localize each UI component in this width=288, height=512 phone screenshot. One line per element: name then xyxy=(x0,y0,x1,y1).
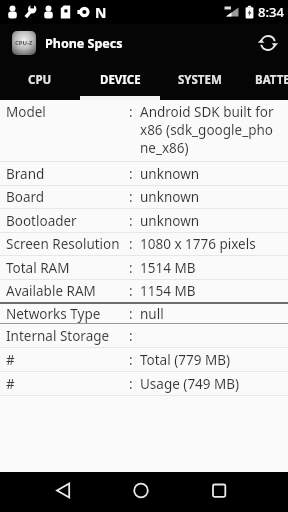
staticText: : xyxy=(129,327,133,345)
button[interactable]: SYSTEM xyxy=(160,62,240,100)
staticText: unknown xyxy=(140,188,200,206)
button[interactable]: CPU xyxy=(0,62,80,100)
staticText: Brand xyxy=(6,165,45,183)
button[interactable] xyxy=(121,472,161,512)
staticText: unknown xyxy=(140,212,200,230)
staticText: DEVICE xyxy=(100,72,141,88)
button[interactable]: # xyxy=(0,348,288,371)
button[interactable]: Networks Type xyxy=(0,304,288,323)
staticText: : xyxy=(129,259,133,277)
staticText: : xyxy=(129,103,133,121)
staticText: Available RAM xyxy=(6,282,96,300)
staticText: SYSTEM xyxy=(178,72,222,88)
button[interactable]: Brand xyxy=(0,162,288,185)
staticText: : xyxy=(129,375,133,393)
staticText: : xyxy=(129,188,133,206)
staticText: # xyxy=(6,351,15,369)
button[interactable]: DEVICE xyxy=(80,62,160,100)
button[interactable]: Model xyxy=(0,100,288,161)
button[interactable]: Bootloader xyxy=(0,209,288,232)
staticText: null xyxy=(140,305,164,323)
staticText: 1154 MB xyxy=(140,282,196,300)
staticText: : xyxy=(129,235,133,253)
staticText: Bootloader xyxy=(6,212,77,230)
staticText: CPU xyxy=(28,72,52,88)
staticText: Total RAM xyxy=(6,259,70,277)
staticText: Board xyxy=(6,188,45,206)
button[interactable] xyxy=(199,472,239,512)
button[interactable]: Screen Resolution xyxy=(0,233,288,255)
button[interactable]: Total RAM xyxy=(0,256,288,279)
button[interactable] xyxy=(258,33,278,53)
staticText: Total (779 MB) xyxy=(140,351,230,369)
staticText: Screen Resolution xyxy=(6,235,120,253)
staticText: N xyxy=(95,3,107,22)
staticText: 1080 x 1776 pixels xyxy=(140,235,256,253)
staticText: Android SDK built for x86 (sdk_google_ph… xyxy=(140,103,274,157)
staticText: : xyxy=(129,165,133,183)
staticText: : xyxy=(129,212,133,230)
staticText: Model xyxy=(6,103,46,121)
staticText: # xyxy=(6,375,15,393)
staticText: Networks Type xyxy=(6,305,101,323)
staticText: Phone Specs xyxy=(45,35,123,52)
button[interactable] xyxy=(43,472,83,512)
staticText: : xyxy=(129,305,133,323)
staticText: BATTERY xyxy=(255,72,288,88)
button[interactable]: # xyxy=(0,372,288,395)
button[interactable]: BATTERY xyxy=(240,62,288,100)
button[interactable]: Board xyxy=(0,186,288,208)
button[interactable]: Internal Storage xyxy=(0,324,288,347)
staticText: : xyxy=(129,351,133,369)
staticText: Internal Storage xyxy=(6,327,110,345)
button[interactable]: Available RAM xyxy=(0,280,288,302)
staticText: CPU-Z xyxy=(15,39,33,47)
staticText: 8:34 xyxy=(258,3,284,21)
staticText: unknown xyxy=(140,165,200,183)
staticText: : xyxy=(129,282,133,300)
staticText: Usage (749 MB) xyxy=(140,375,240,393)
staticText: 1514 MB xyxy=(140,259,196,277)
